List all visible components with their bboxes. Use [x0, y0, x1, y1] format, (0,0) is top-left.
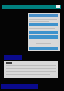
button[interactable]: Top app bar	[2, 5, 61, 9]
button[interactable]	[28, 13, 60, 51]
